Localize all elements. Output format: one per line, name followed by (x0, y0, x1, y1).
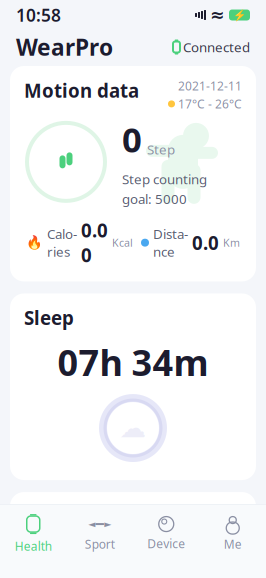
staticText: 2021-12-11 (178, 78, 242, 94)
button[interactable]: Sport (66, 514, 133, 554)
staticText: Sleep (24, 305, 74, 330)
staticText: Motion data (24, 78, 139, 103)
staticText: Health (15, 538, 52, 554)
staticText: 07h 34m (57, 338, 208, 386)
staticText: Step (147, 140, 175, 158)
staticText: Step counting (122, 170, 207, 188)
button[interactable]: Connected (173, 38, 250, 56)
staticText: 17°C - 26°C (178, 96, 242, 112)
staticText: 0.0 (192, 230, 219, 255)
staticText: 0.00 (81, 218, 108, 267)
button[interactable]: Health (0, 512, 66, 556)
staticText: WearPro (16, 32, 113, 62)
staticText: ► (104, 519, 111, 529)
staticText: Connected (183, 38, 250, 56)
staticText: Kcal (112, 236, 133, 250)
staticText: ≈ (210, 5, 225, 25)
staticText: Sport (85, 536, 115, 552)
staticText: 0 (122, 116, 142, 162)
staticText: Device (147, 536, 185, 551)
staticText: Distance (153, 225, 188, 260)
staticText: ⚡ (233, 9, 246, 21)
staticText: goal: 5000 (122, 190, 187, 208)
staticText: 🔥 (26, 235, 43, 250)
button[interactable]: Device (133, 515, 199, 553)
staticText: ☁ (119, 413, 146, 443)
button[interactable]: Me (199, 514, 266, 554)
staticText: 82 (116, 535, 150, 574)
staticText: Me (224, 536, 242, 552)
staticText: Heart rate (24, 504, 119, 529)
staticText: Km (223, 236, 240, 250)
staticText: 10:58 (16, 3, 61, 26)
staticText: Calories (47, 225, 77, 260)
staticText: ◄ (88, 519, 95, 529)
